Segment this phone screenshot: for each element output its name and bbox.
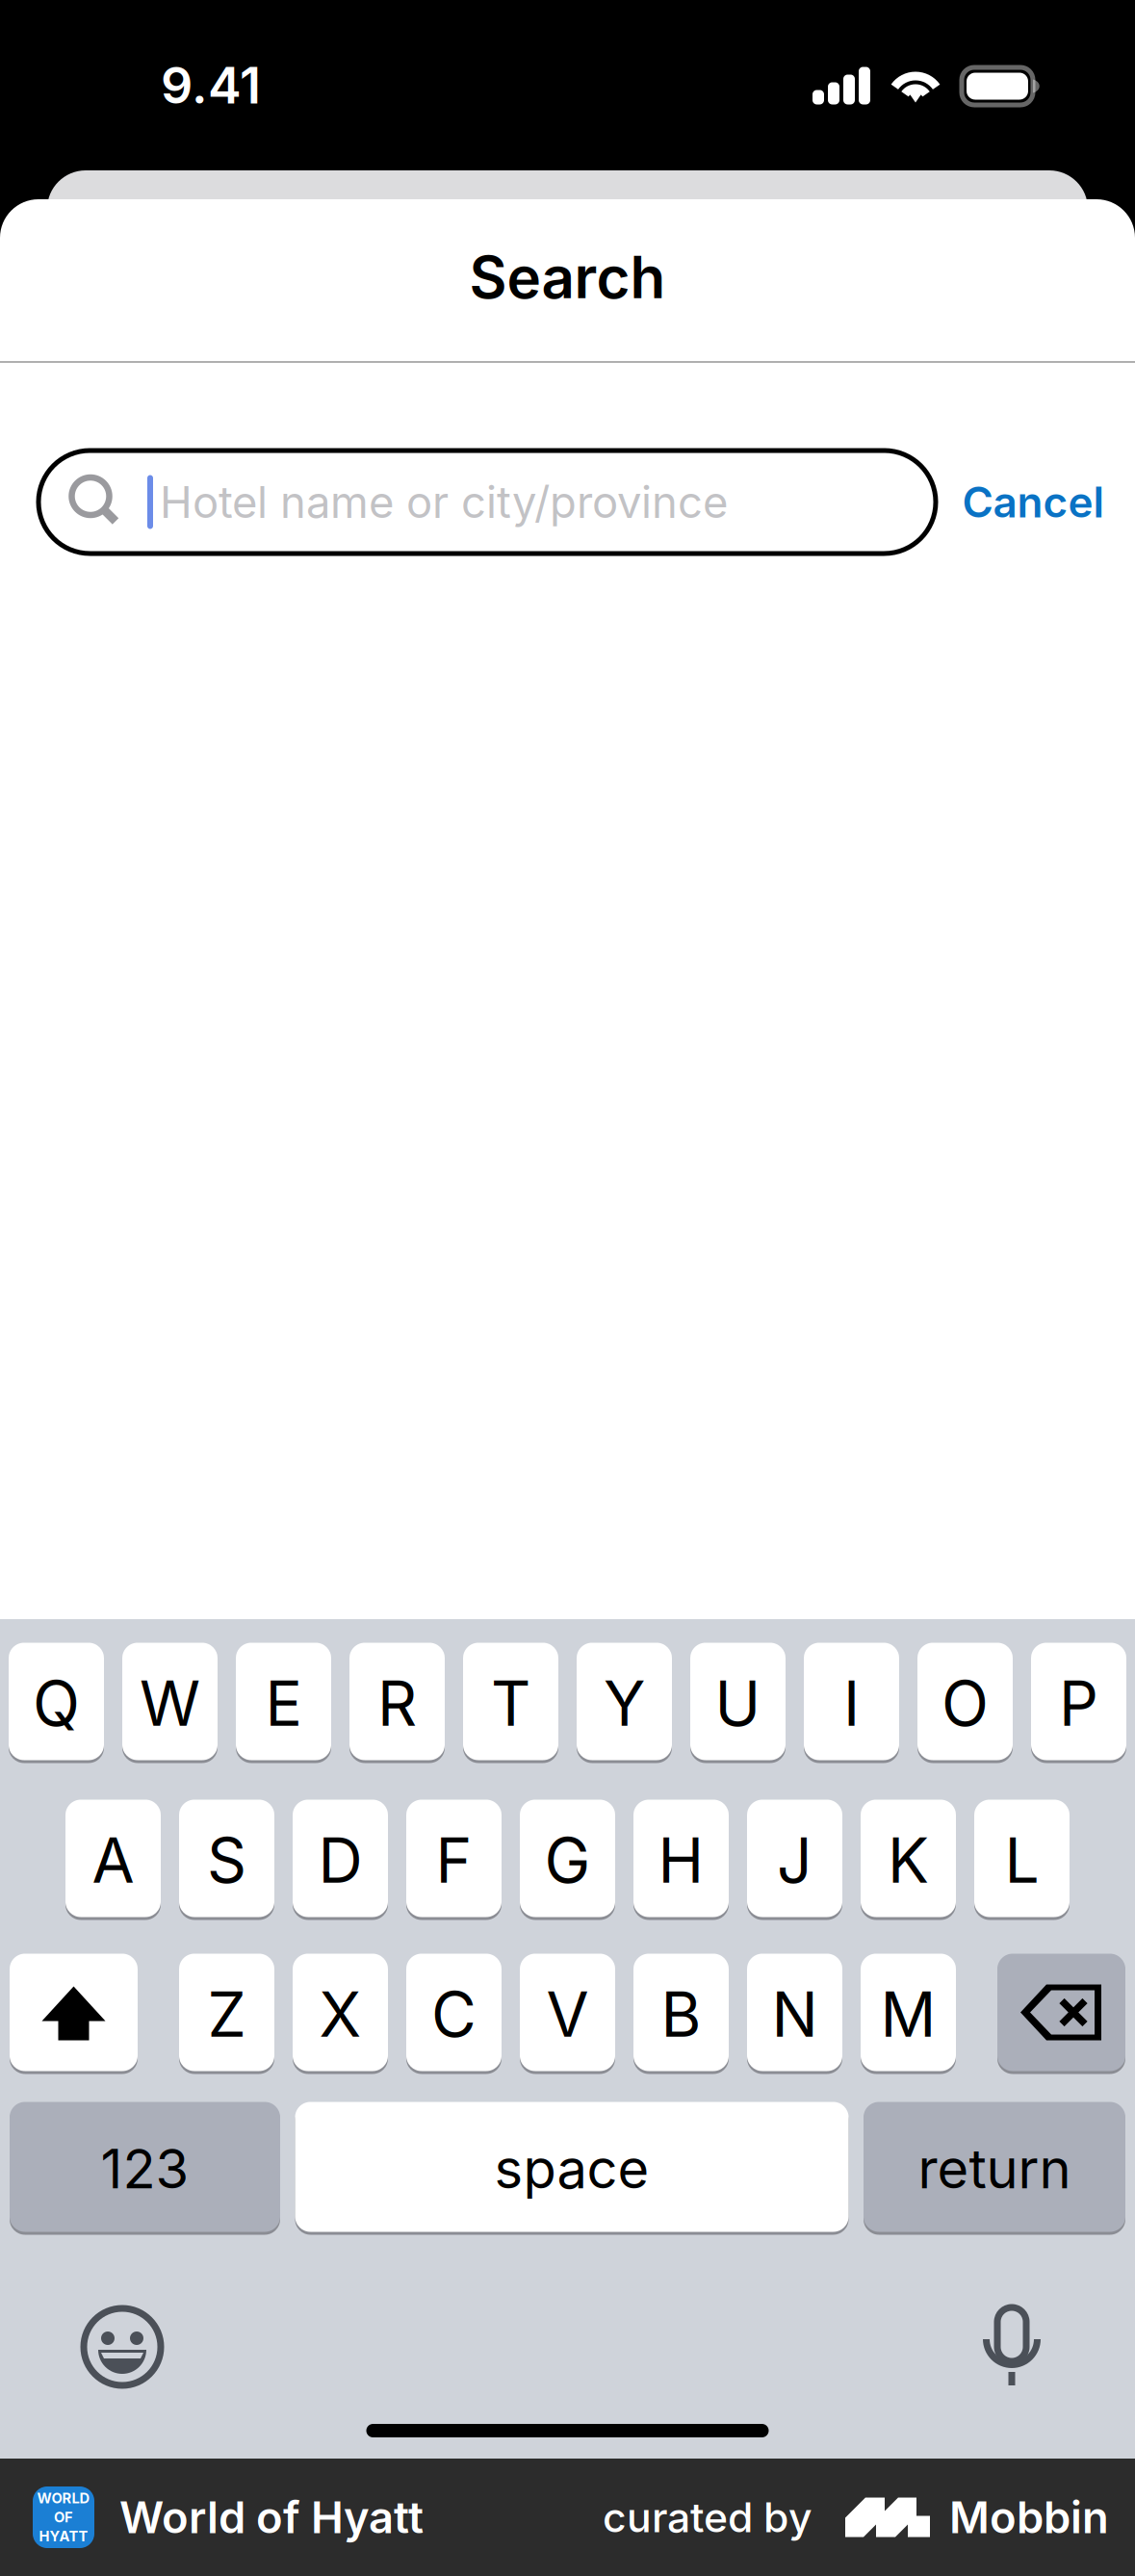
staticText: Search (469, 242, 666, 312)
staticText: X (319, 1977, 361, 2052)
button[interactable]: J (747, 1798, 842, 1919)
staticText: G (544, 1823, 591, 1898)
staticText: O (942, 1666, 989, 1741)
button[interactable]: Q (9, 1641, 104, 1762)
button[interactable]: P (1031, 1641, 1126, 1762)
button[interactable]: F (406, 1798, 502, 1919)
button[interactable]: L (974, 1798, 1070, 1919)
staticText: WORLD (37, 2490, 90, 2507)
staticText: S (207, 1823, 246, 1898)
button[interactable]: 123 (10, 2100, 280, 2233)
staticText: V (546, 1977, 589, 2052)
staticText: return (918, 2136, 1071, 2201)
button[interactable]: B (633, 1952, 729, 2073)
button[interactable]: S (179, 1798, 274, 1919)
staticText: L (1005, 1823, 1039, 1898)
button[interactable]: R (349, 1641, 445, 1762)
staticText: F (436, 1823, 472, 1898)
button[interactable]: O (917, 1641, 1013, 1762)
button[interactable]: Hotel name or city/province (39, 451, 936, 554)
button[interactable]: E (236, 1641, 331, 1762)
staticText: M (880, 1977, 936, 2052)
staticText: 123 (101, 2136, 189, 2201)
staticText: World of Hyatt (119, 2491, 424, 2544)
staticText: T (491, 1666, 530, 1741)
staticText: R (377, 1666, 417, 1741)
button[interactable]: A (65, 1798, 161, 1919)
staticText: P (1059, 1666, 1098, 1741)
staticText: Cancel (962, 476, 1105, 528)
staticText: A (92, 1823, 134, 1898)
staticText: U (715, 1666, 761, 1741)
button[interactable]: C (406, 1952, 502, 2073)
button[interactable]: Delete (997, 1952, 1125, 2073)
staticText: Q (33, 1666, 80, 1741)
button[interactable]: Cancel (955, 451, 1112, 554)
staticText: HYATT (39, 2528, 88, 2545)
staticText: curated by (603, 2492, 813, 2542)
button[interactable]: M (861, 1952, 956, 2073)
staticText: E (265, 1666, 302, 1741)
staticText: I (843, 1666, 860, 1741)
staticText: Y (604, 1666, 645, 1741)
button[interactable]: N (747, 1952, 842, 2073)
button[interactable]: W (122, 1641, 218, 1762)
staticText: W (140, 1666, 200, 1741)
staticText: 9.41 (161, 55, 261, 115)
button[interactable]: D (293, 1798, 388, 1919)
button[interactable]: Emoji keyboard (82, 2306, 163, 2387)
button[interactable]: X (293, 1952, 388, 2073)
button[interactable]: Z (179, 1952, 274, 2073)
button[interactable]: G (520, 1798, 615, 1919)
staticText: C (431, 1977, 477, 2052)
staticText: Z (207, 1977, 246, 2052)
button[interactable]: I (804, 1641, 899, 1762)
button[interactable]: Shift (10, 1952, 138, 2073)
staticText: space (494, 2136, 649, 2201)
button[interactable]: K (861, 1798, 956, 1919)
staticText: K (888, 1823, 929, 1898)
button[interactable]: H (633, 1798, 729, 1919)
button[interactable]: Dictation (971, 2306, 1052, 2387)
staticText: Mobbin (949, 2491, 1109, 2544)
staticText: D (318, 1823, 362, 1898)
button[interactable]: T (463, 1641, 558, 1762)
staticText: Hotel name or city/province (160, 476, 728, 528)
button[interactable]: U (690, 1641, 786, 1762)
button[interactable]: return (864, 2100, 1125, 2233)
staticText: B (661, 1977, 701, 2052)
staticText: OF (54, 2509, 73, 2526)
staticText: H (658, 1823, 704, 1898)
staticText: N (772, 1977, 818, 2052)
button[interactable]: V (520, 1952, 615, 2073)
staticText: J (777, 1823, 813, 1898)
button[interactable]: Y (577, 1641, 672, 1762)
button[interactable]: space (295, 2100, 849, 2233)
